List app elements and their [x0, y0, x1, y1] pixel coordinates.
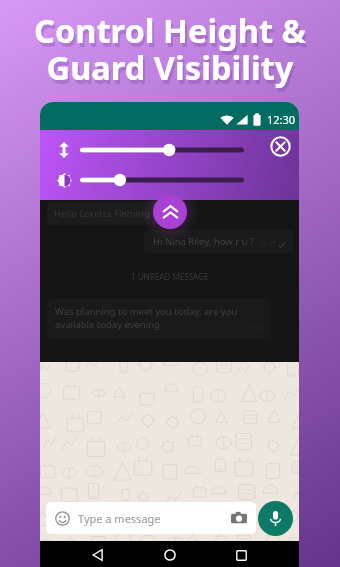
- staticText: Control Height &: [2, 12, 340, 56]
- button[interactable]: Recent apps: [228, 542, 254, 567]
- staticText: 1 UNREAD MESSAGE: [131, 271, 209, 282]
- staticText: Hi Nina Riley, how r u ?: [153, 235, 254, 248]
- button[interactable]: Home: [157, 542, 183, 567]
- staticText: Type a message: [78, 511, 161, 526]
- staticText: Guard Visibility: [0, 45, 340, 89]
- button[interactable]: Back: [85, 542, 111, 567]
- staticText: 12:30: [267, 112, 296, 127]
- staticText: Control Height &: [0, 8, 340, 52]
- button[interactable]: Close: [269, 135, 291, 157]
- button[interactable]: Type a message: [46, 502, 256, 534]
- staticText: Was planning to meet you today, are you …: [55, 305, 238, 331]
- button[interactable]: Record voice message: [258, 501, 293, 536]
- staticText: Guard Visibility: [2, 49, 340, 93]
- button[interactable]: Expand controls: [153, 195, 187, 229]
- staticText: Hello Loretta Fleming: [54, 207, 150, 220]
